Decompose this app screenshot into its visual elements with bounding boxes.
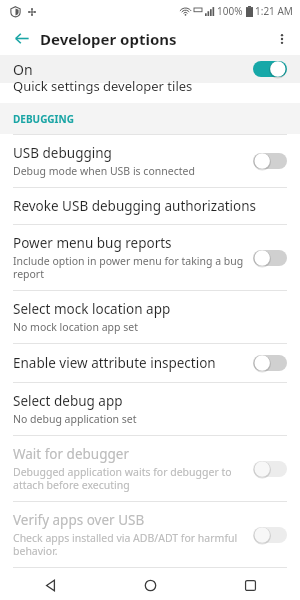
button[interactable]: USB debugging [0,135,300,187]
button[interactable]: Back [4,22,38,55]
button[interactable] [253,248,287,268]
staticText: On [13,60,33,79]
button[interactable] [253,525,287,545]
button[interactable]: Verify apps over USB [0,502,300,567]
button[interactable] [253,459,287,479]
staticText: Include option in power menu for taking … [13,254,244,281]
button[interactable]: Wait for debugger [0,436,300,501]
button[interactable]: Power menu bug reports [0,225,300,290]
staticText: Wait for debugger [13,445,129,463]
button[interactable] [253,353,287,373]
staticText: Select debug app [13,392,123,410]
staticText: Verify apps over USB [13,511,145,529]
button[interactable]: On [0,55,300,83]
staticText: Developer options [40,29,177,49]
staticText: 1:21 AM [255,4,293,18]
button[interactable]: Back [0,570,100,600]
staticText: Enable view attribute inspection [13,354,216,372]
staticText: No debug application set [13,412,137,426]
staticText: Revoke USB debugging authorizations [13,197,257,215]
staticText: USB debugging [13,144,112,162]
button[interactable]: Home [100,570,200,600]
staticText: Debugged application waits for debugger … [13,465,232,492]
button[interactable]: Enable view attribute inspection [0,344,300,382]
button[interactable]: Revoke USB debugging authorizations [0,188,300,224]
staticText: Power menu bug reports [13,234,172,252]
staticText: DEBUGGING [13,112,74,126]
button[interactable]: Select debug app [0,383,300,435]
staticText: No mock location app set [13,320,138,334]
button[interactable] [253,59,287,79]
button[interactable]: Select mock location app [0,291,300,343]
staticText: Select mock location app [13,300,171,318]
staticText: Check apps installed via ADB/ADT for har… [13,531,238,558]
staticText: Debug mode when USB is connected [13,164,195,178]
button[interactable]: More options [266,23,298,55]
button[interactable]: Recent apps [200,570,300,600]
button[interactable] [253,151,287,171]
staticText: Quick settings developer tiles [13,77,193,95]
staticText: 100% [217,4,243,18]
